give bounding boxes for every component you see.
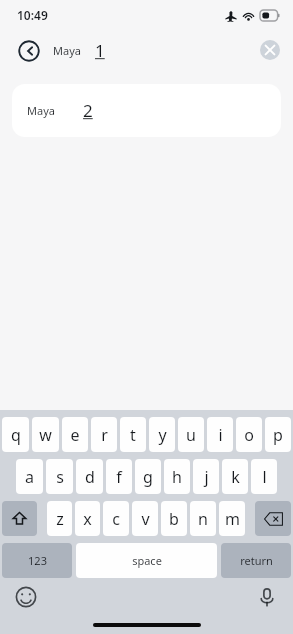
button[interactable]: h <box>164 459 190 494</box>
staticText: i <box>218 424 223 446</box>
staticText: c <box>112 508 120 530</box>
button[interactable]: c <box>103 501 129 536</box>
button[interactable]: b <box>161 501 187 536</box>
staticText: g <box>143 466 153 488</box>
staticText: 123 <box>28 553 47 568</box>
button[interactable]: s <box>46 459 73 494</box>
staticText: Maya <box>27 103 55 118</box>
button[interactable]: e <box>62 417 88 452</box>
button[interactable]: x <box>75 501 100 536</box>
button[interactable]: i <box>207 417 233 452</box>
staticText: u <box>186 424 196 446</box>
staticText: q <box>11 424 21 446</box>
button[interactable]: m <box>219 501 245 536</box>
button[interactable]: f <box>106 459 132 494</box>
button[interactable]: t <box>120 417 146 452</box>
staticText: 1 <box>95 39 105 62</box>
staticText: e <box>70 424 80 446</box>
staticText: z <box>56 508 64 530</box>
button[interactable]: Maya <box>12 84 281 137</box>
staticText: m <box>225 508 240 530</box>
staticText: h <box>172 466 182 488</box>
button[interactable]: o <box>236 417 262 452</box>
button[interactable]: u <box>178 417 204 452</box>
staticText: x <box>83 508 92 530</box>
button[interactable]: v <box>132 501 158 536</box>
button[interactable]: Shift <box>2 501 37 536</box>
staticText: Maya <box>53 43 81 58</box>
staticText: n <box>198 508 208 530</box>
staticText: l <box>262 466 267 488</box>
button[interactable]: w <box>32 417 59 452</box>
staticText: p <box>273 424 283 446</box>
button[interactable]: n <box>190 501 216 536</box>
staticText: w <box>39 424 52 446</box>
staticText: k <box>231 466 240 488</box>
staticText: y <box>158 424 167 446</box>
button[interactable]: k <box>222 459 248 494</box>
staticText: o <box>244 424 254 446</box>
staticText: s <box>56 466 64 488</box>
staticText: 10:49 <box>17 7 48 23</box>
button[interactable]: Dictate <box>255 585 279 609</box>
staticText: f <box>116 466 122 488</box>
staticText: b <box>169 508 179 530</box>
staticText: 2 <box>83 99 93 122</box>
button[interactable]: return <box>221 543 291 578</box>
button[interactable]: Delete <box>255 501 291 536</box>
button[interactable]: p <box>265 417 291 452</box>
button[interactable]: Back <box>18 40 40 62</box>
staticText: space <box>132 553 162 568</box>
button[interactable]: d <box>76 459 103 494</box>
button[interactable]: z <box>47 501 72 536</box>
button[interactable]: y <box>149 417 175 452</box>
staticText: a <box>25 466 34 488</box>
button[interactable]: q <box>2 417 29 452</box>
button[interactable]: g <box>135 459 161 494</box>
button[interactable]: Emoji <box>14 585 38 609</box>
staticText: t <box>130 424 136 446</box>
button[interactable]: l <box>251 459 277 494</box>
button[interactable]: r <box>91 417 117 452</box>
staticText: j <box>204 466 209 488</box>
button[interactable]: a <box>16 459 43 494</box>
staticText: d <box>85 466 95 488</box>
staticText: r <box>101 424 108 446</box>
button[interactable]: space <box>76 543 217 578</box>
staticText: v <box>141 508 150 530</box>
button[interactable]: j <box>193 459 219 494</box>
button[interactable]: Close <box>260 40 280 60</box>
staticText: return <box>240 553 273 568</box>
button[interactable]: 123 <box>2 543 72 578</box>
